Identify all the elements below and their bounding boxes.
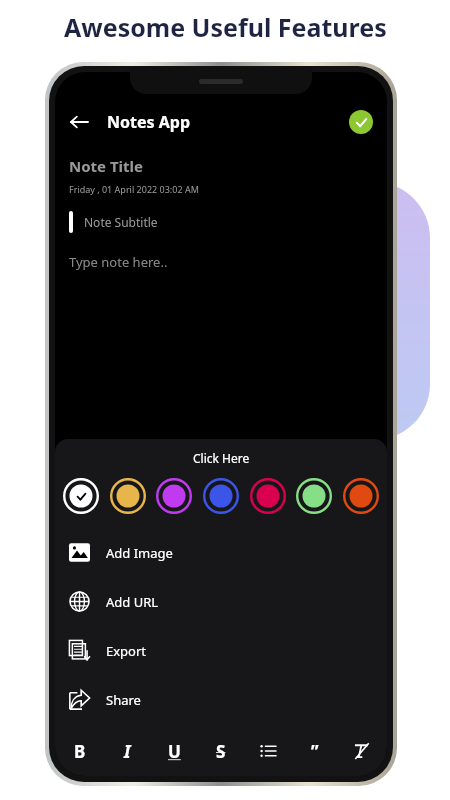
staticText: Add URL [106,593,159,611]
button[interactable]: Color 1 [110,478,146,514]
staticText: Note Subtitle [84,214,158,230]
button[interactable]: Clear formatting [347,736,377,766]
staticText: Notes App [107,111,190,133]
staticText: B [74,740,86,763]
button[interactable]: Save note [349,110,373,134]
staticText: Export [106,642,147,660]
staticText: Friday , 01 April 2022 03:02 AM [69,183,199,195]
button[interactable]: Italic [112,736,142,766]
button[interactable]: Add Image [55,528,387,577]
staticText: ” [311,740,319,763]
button[interactable]: Bullet list [253,736,283,766]
button[interactable]: Color 0 [63,478,99,514]
button[interactable]: Bold [65,736,95,766]
button[interactable]: Add URL [55,577,387,626]
staticText: Share [106,691,141,709]
button[interactable]: Click Here [193,450,250,466]
button[interactable]: Share [55,675,387,724]
staticText: S [216,740,226,763]
staticText: Note Title [69,156,144,176]
button[interactable]: Quote [300,736,330,766]
button[interactable]: Color 2 [156,478,192,514]
staticText: U [168,740,181,763]
button[interactable]: Color 5 [296,478,332,514]
staticText: Awesome Useful Features [64,10,387,44]
button[interactable]: Color 3 [203,478,239,514]
staticText: Add Image [106,544,173,562]
button[interactable]: Color 4 [250,478,286,514]
button[interactable]: Strikethrough [206,736,236,766]
staticText: I [124,740,131,763]
button[interactable]: Color 6 [343,478,379,514]
button[interactable]: Export [55,626,387,675]
button[interactable]: Back [63,106,95,138]
staticText: Type note here.. [69,253,168,271]
button[interactable]: Underline [159,736,189,766]
